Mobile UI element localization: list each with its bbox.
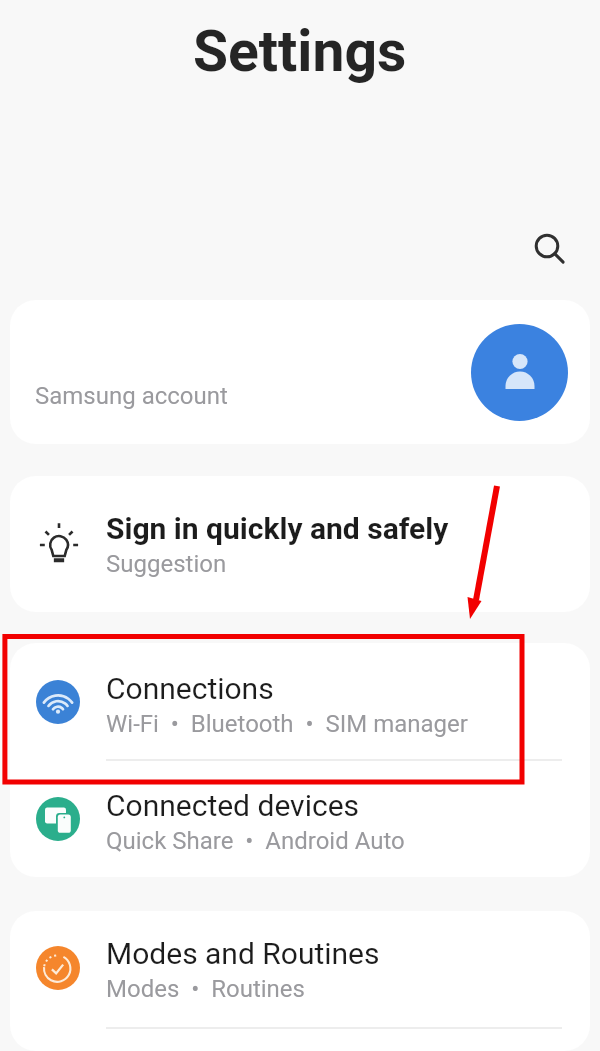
staticText: Quick Share • Android Auto xyxy=(106,827,405,855)
staticText: Sign in quickly and safely xyxy=(106,511,449,546)
button[interactable]: Modes and Routines xyxy=(10,911,590,1024)
staticText: Wi-Fi • Bluetooth • SIM manager xyxy=(106,710,468,738)
staticText: Suggestion xyxy=(106,550,227,578)
button[interactable]: Search xyxy=(527,227,573,273)
staticText: Connected devices xyxy=(106,788,360,823)
staticText: Modes • Routines xyxy=(106,975,305,1003)
staticText: Connections xyxy=(106,671,274,706)
staticText: Modes and Routines xyxy=(106,936,380,971)
button[interactable]: Connected devices xyxy=(10,761,590,877)
button[interactable]: Sign in quickly and safely xyxy=(10,476,590,612)
button[interactable]: Connections xyxy=(10,643,590,761)
staticText: Samsung account xyxy=(35,382,228,410)
staticText: Settings xyxy=(193,18,407,85)
button[interactable]: Samsung account xyxy=(10,300,590,444)
